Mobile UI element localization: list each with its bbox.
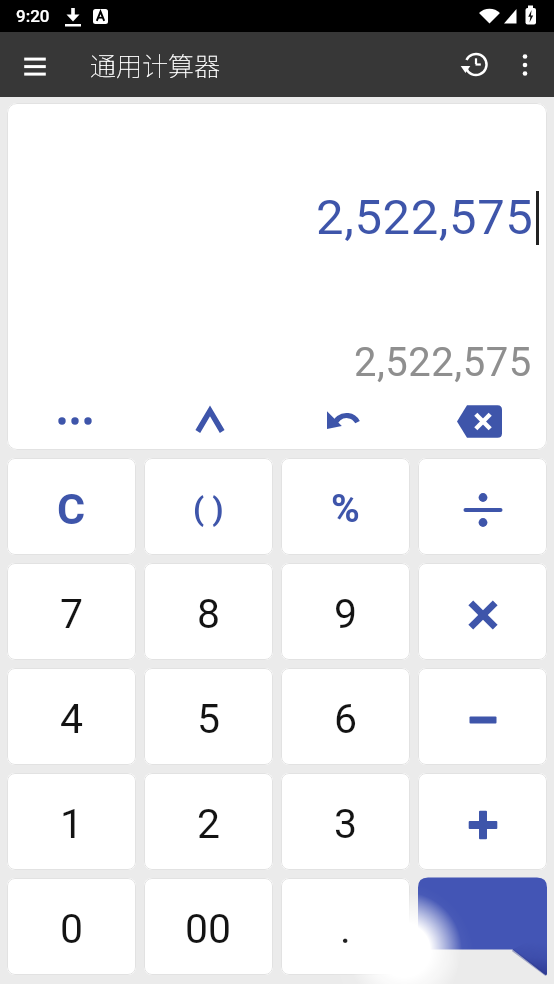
button[interactable] [418,668,547,765]
staticText: 通用计算器 [90,46,221,84]
staticText: . [340,905,351,953]
button[interactable]: 4 [7,668,136,765]
button[interactable]: 1 [7,773,136,870]
button[interactable]: 5 [144,668,273,765]
button[interactable] [418,878,547,975]
button[interactable] [7,398,142,444]
staticText: 2,522,575 [316,189,534,246]
staticText: 0 [60,905,84,953]
staticText: % [331,486,360,532]
button[interactable]: % [281,458,410,555]
button[interactable] [418,773,547,870]
button[interactable]: 3 [281,773,410,870]
staticText: 4 [60,695,84,743]
staticText: 2 [197,800,221,848]
button[interactable]: C [7,458,136,555]
staticText: C [57,484,86,534]
button[interactable]: 8 [144,563,273,660]
button[interactable]: 6 [281,668,410,765]
button[interactable] [12,42,58,88]
staticText: 9 [334,590,358,638]
button[interactable]: 7 [7,563,136,660]
staticText: 7 [60,590,84,638]
staticText: 6 [334,695,358,743]
staticText: 8 [197,590,221,638]
button[interactable] [418,458,547,555]
staticText: 9:20 [16,6,50,26]
button[interactable] [418,563,547,660]
button[interactable]: 0 [7,878,136,975]
button[interactable] [277,398,412,444]
button[interactable]: ( ) [144,458,273,555]
staticText: 5 [197,695,221,743]
button[interactable]: . [281,878,410,975]
staticText: ( ) [193,490,224,528]
staticText: 3 [334,800,358,848]
staticText: 2,522,575 [354,339,532,386]
button[interactable]: 9 [281,563,410,660]
button[interactable]: 00 [144,878,273,975]
button[interactable] [412,398,547,444]
button[interactable] [142,398,277,444]
button[interactable] [506,45,546,85]
staticText: 1 [60,800,84,848]
staticText: 00 [185,905,232,953]
button[interactable] [454,43,498,87]
button[interactable]: 2 [144,773,273,870]
